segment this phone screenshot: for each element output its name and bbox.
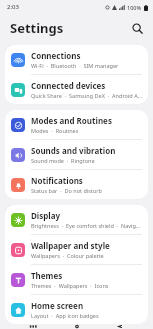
button[interactable]: Display	[5, 205, 148, 234]
staticText: Brightness · Eye comfort shield · Naviga…	[31, 222, 142, 229]
staticText: 2:03	[7, 3, 19, 11]
button[interactable]: Search	[127, 18, 147, 38]
staticText: Notifications	[31, 175, 83, 186]
staticText: Themes · Wallpapers · Icons	[31, 282, 109, 289]
button[interactable]: Home	[66, 324, 88, 329]
staticText: Wallpapers · Colour palette	[31, 252, 104, 259]
button[interactable]: Recents	[22, 324, 44, 329]
staticText: Wi-Fi · Bluetooth · SIM manager	[31, 62, 119, 69]
staticText: Layout · App icon badges	[31, 312, 99, 319]
staticText: Modes and Routines	[31, 115, 112, 126]
staticText: Modes · Routines	[31, 127, 79, 134]
staticText: Status bar · Do not disturb	[31, 187, 102, 194]
staticText: Home screen	[31, 300, 84, 311]
button[interactable]: Themes	[5, 265, 148, 294]
staticText: Display	[31, 210, 61, 221]
staticText: Connections	[31, 50, 81, 61]
button[interactable]: Connected devices	[5, 75, 148, 104]
staticText: Themes	[31, 270, 63, 281]
staticText: Wallpaper and style	[31, 240, 110, 251]
button[interactable]: Back	[109, 324, 131, 329]
button[interactable]: Modes and Routines	[5, 110, 148, 139]
staticText: Quick Share · Samsung DeX · Android Auto	[31, 92, 142, 99]
button[interactable]: Home screen	[5, 295, 148, 324]
staticText: Sounds and vibration	[31, 145, 116, 156]
staticText: 100%	[127, 4, 142, 11]
staticText: Sound mode · Ringtone	[31, 157, 95, 164]
button[interactable]: Connections	[5, 45, 148, 74]
button[interactable]: Wallpaper and style	[5, 235, 148, 264]
staticText: Settings	[10, 19, 64, 37]
button[interactable]: Notifications	[5, 170, 148, 199]
staticText: Connected devices	[31, 80, 106, 91]
button[interactable]: Sounds and vibration	[5, 140, 148, 169]
